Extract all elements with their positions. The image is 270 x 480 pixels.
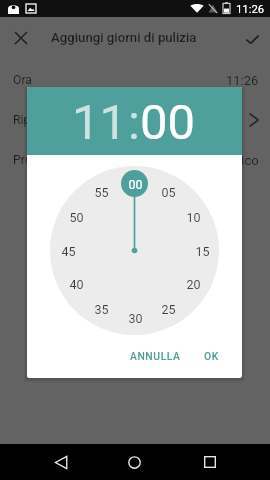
staticText: Ora: [13, 73, 32, 87]
button[interactable]: ANNULLA: [123, 344, 188, 368]
staticText: 35: [94, 302, 109, 317]
staticText: :: [128, 94, 140, 151]
staticText: 30: [128, 311, 143, 326]
button[interactable]: Home: [112, 444, 157, 480]
staticText: 50: [69, 210, 84, 225]
button[interactable]: Chiudi: [2, 19, 40, 57]
button[interactable]: Recenti: [187, 444, 232, 480]
staticText: 11:26: [226, 73, 259, 88]
button[interactable]: Promemoria: [0, 140, 270, 180]
staticText: 05: [161, 185, 176, 200]
staticText: 00: [128, 177, 143, 192]
button[interactable]: OK: [197, 344, 226, 368]
button[interactable]: 00: [140, 94, 196, 151]
staticText: Periodico: [204, 153, 259, 168]
button[interactable]: Ripeti: [0, 100, 270, 140]
staticText: 40: [69, 277, 84, 292]
staticText: 45: [61, 244, 76, 259]
button[interactable]: Indietro: [38, 444, 83, 480]
button[interactable]: 11: [72, 94, 128, 151]
staticText: Ripeti: [13, 113, 44, 127]
button[interactable]: Ora: [0, 60, 270, 100]
staticText: ANNULLA: [130, 350, 181, 362]
staticText: 15: [195, 244, 210, 259]
staticText: 10: [186, 210, 201, 225]
staticText: 25: [161, 302, 176, 317]
staticText: 11:26: [236, 3, 265, 16]
staticText: 55: [94, 185, 109, 200]
button[interactable]: Conferma: [233, 20, 270, 58]
staticText: Promemoria: [13, 153, 81, 167]
staticText: OK: [204, 350, 219, 362]
staticText: 20: [186, 277, 201, 292]
staticText: Aggiungi giorni di pulizia: [51, 30, 197, 45]
